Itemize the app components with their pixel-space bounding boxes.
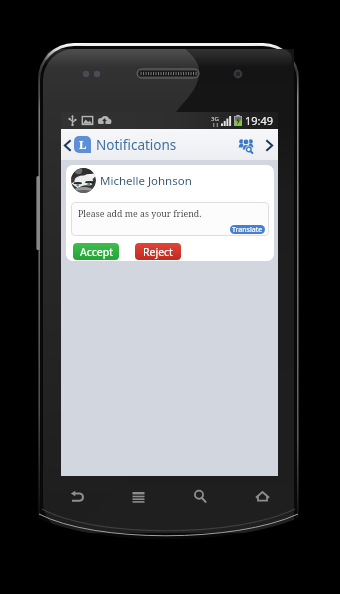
button[interactable]: Menu [118, 478, 159, 514]
staticText: L [79, 137, 87, 152]
button[interactable]: Back [62, 134, 72, 156]
staticText: Notifications [96, 136, 177, 154]
button[interactable]: Home [242, 478, 283, 514]
button[interactable]: Search [180, 478, 221, 514]
button[interactable]: Translate [230, 225, 265, 234]
staticText: Please add me as your friend. [78, 208, 202, 220]
button[interactable]: Reject [135, 243, 181, 260]
button[interactable]: Find people [235, 134, 257, 156]
button[interactable]: Michelle Johnson [66, 165, 274, 261]
button[interactable]: Forward [263, 134, 275, 156]
staticText: Michelle Johnson [100, 173, 192, 189]
staticText: Accept [80, 245, 113, 259]
staticText: 3G [211, 115, 219, 123]
staticText: Reject [143, 245, 173, 259]
button[interactable]: Back [56, 478, 97, 514]
staticText: Translate [232, 225, 263, 234]
button[interactable]: Accept [73, 243, 119, 260]
staticText: 19:49 [245, 113, 274, 128]
